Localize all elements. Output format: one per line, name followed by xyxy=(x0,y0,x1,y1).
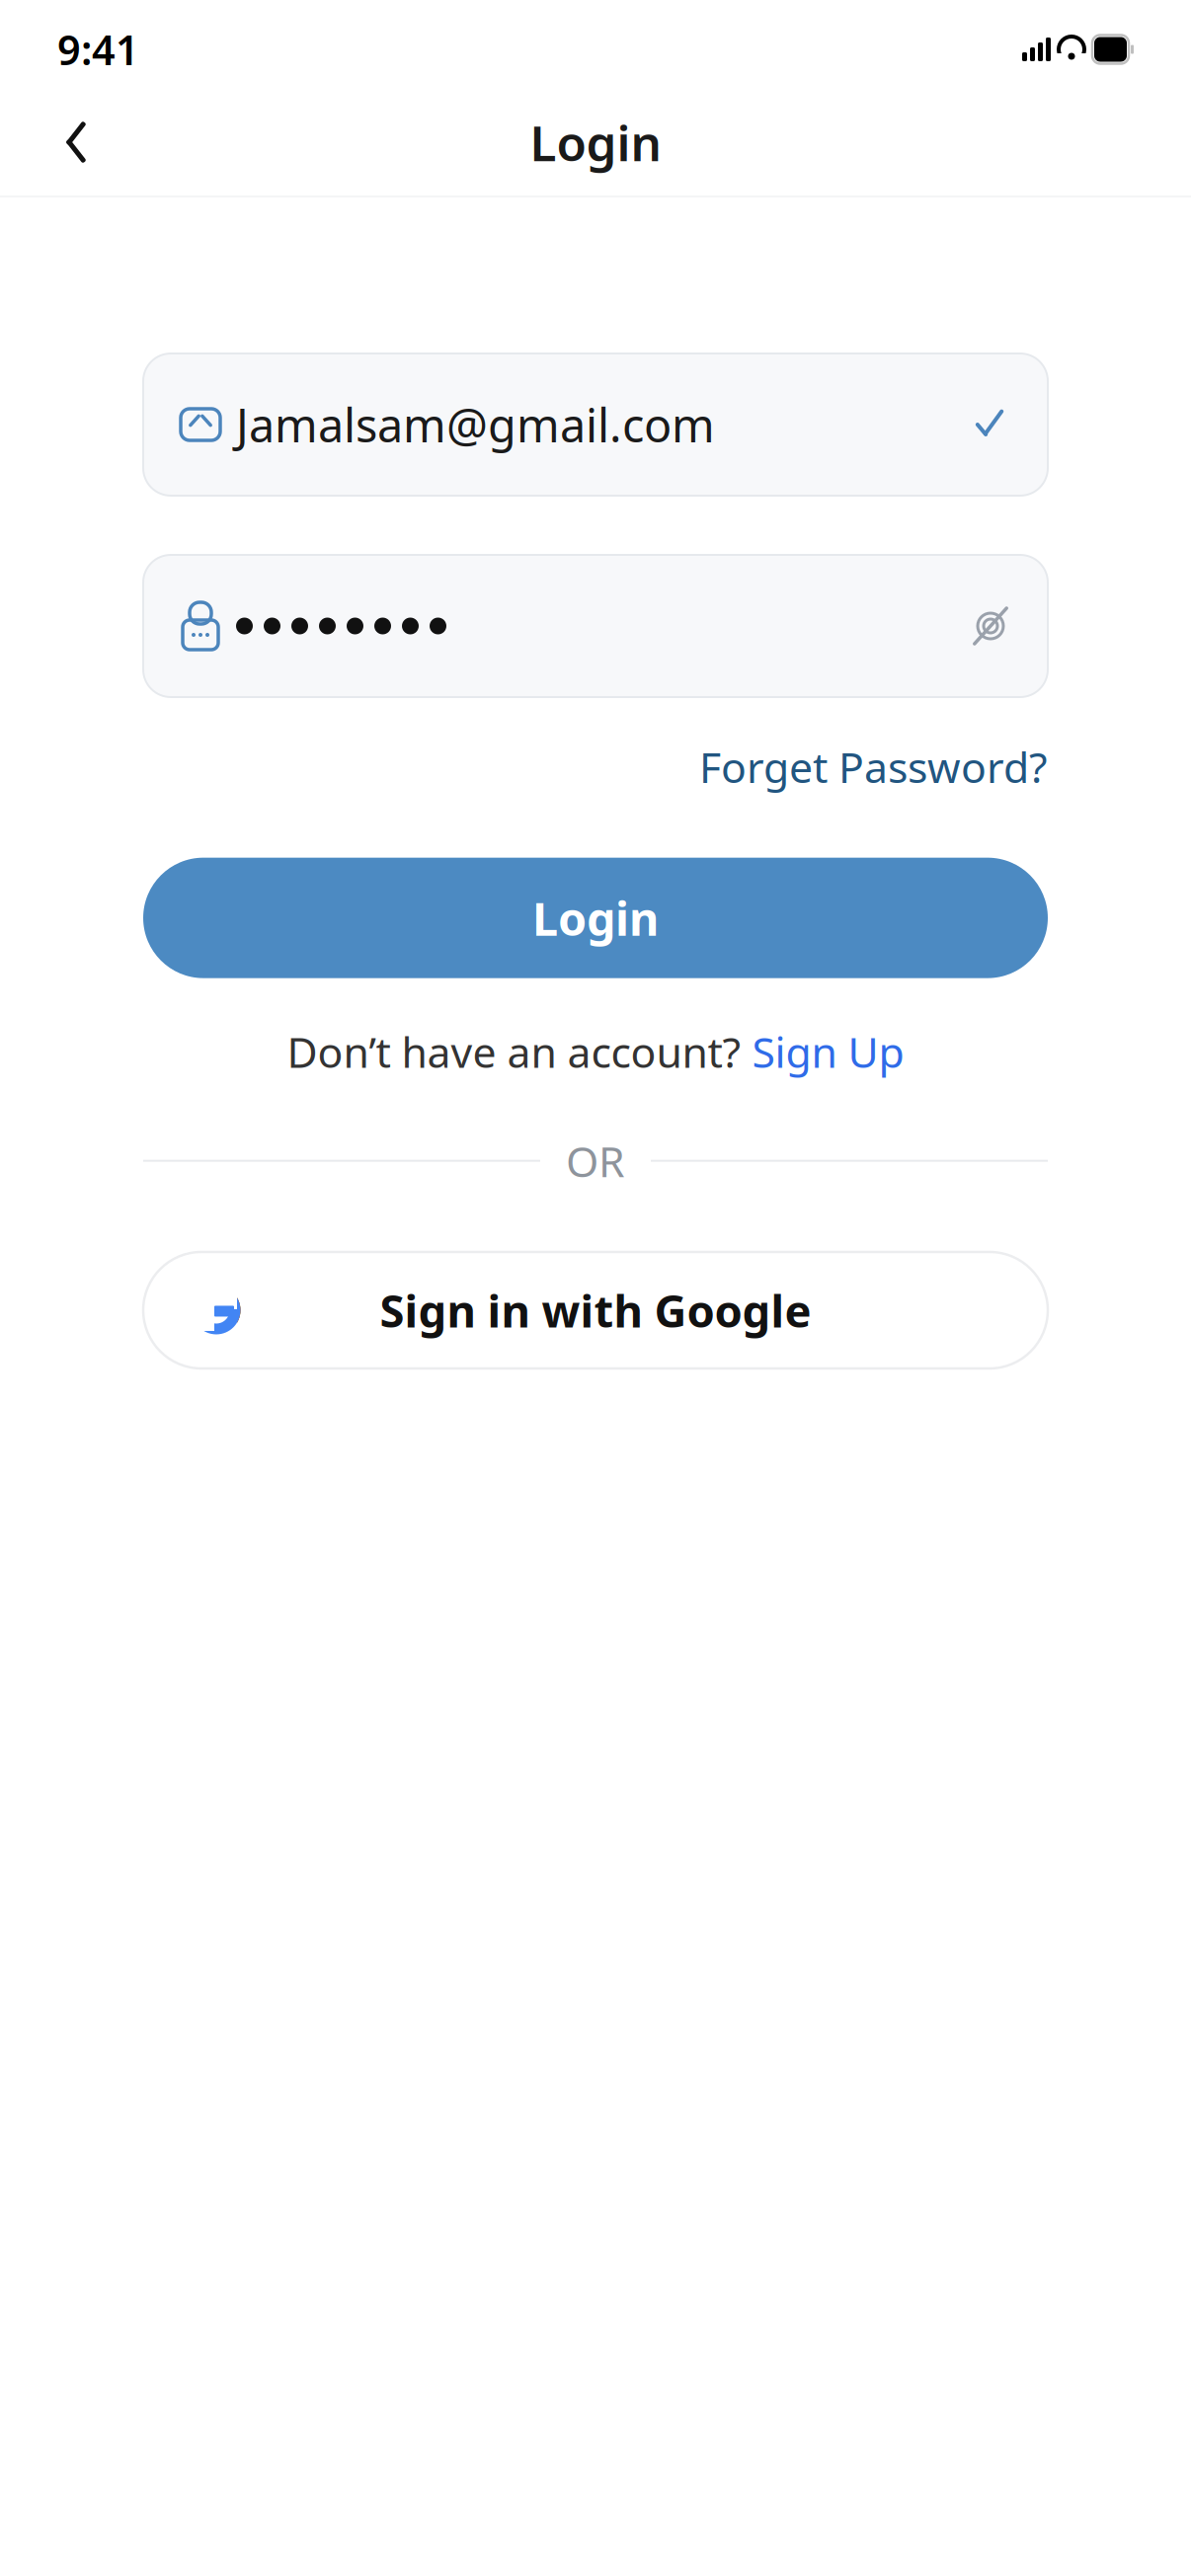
staticText: 9:41 xyxy=(57,22,139,77)
staticText: Login xyxy=(532,887,659,949)
staticText: Sign Up xyxy=(752,1024,904,1080)
staticText: Login xyxy=(530,110,661,174)
button[interactable]: Sign Up xyxy=(752,1024,904,1080)
button[interactable]: Sign in with Google xyxy=(143,1252,1048,1368)
button[interactable]: Back xyxy=(41,108,111,177)
button[interactable]: Show password xyxy=(955,590,1026,662)
staticText: Forget Password? xyxy=(699,739,1048,795)
button[interactable]: Login xyxy=(143,858,1048,978)
staticText: OR xyxy=(566,1133,625,1189)
staticText: Sign in with Google xyxy=(380,1280,811,1340)
staticText: Jamalsam@gmail.com xyxy=(236,394,715,455)
button[interactable]: Forget Password? xyxy=(699,731,1048,802)
staticText: Don’t have an account? xyxy=(287,1024,752,1080)
